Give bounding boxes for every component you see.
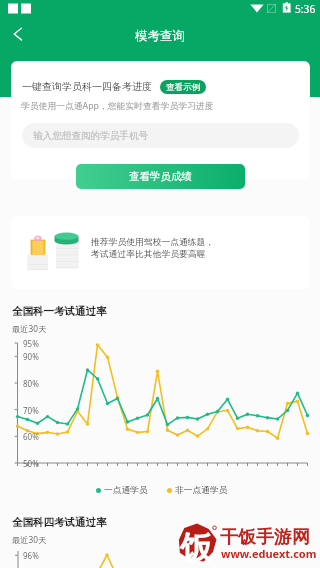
staticText: 5:36 <box>295 2 316 16</box>
staticText: 96% <box>23 550 39 561</box>
button[interactable]: 输入您想查阅的学员手机号 <box>22 123 299 148</box>
button[interactable]: Back <box>0 18 36 54</box>
staticText: 全国科一考试通过率 <box>12 305 107 318</box>
staticText: www.eduext.com <box>221 546 317 561</box>
staticText: 非一点通学员 <box>175 485 228 496</box>
staticText: 一键查询学员科一四备考进度 <box>22 80 152 93</box>
staticText: 50% <box>23 458 39 469</box>
staticText: 查看示例 <box>166 82 201 93</box>
staticText: 60% <box>23 431 39 442</box>
button[interactable]: 推荐学员使用驾校一点通练题， <box>11 216 310 289</box>
staticText: 一点通学员 <box>104 485 148 496</box>
button[interactable]: 查看学员成绩 <box>76 164 245 189</box>
staticText: 查看学员成绩 <box>129 170 192 183</box>
staticText: 饭 <box>180 528 212 568</box>
staticText: 全国科四考试通过率 <box>12 516 107 529</box>
staticText: 95% <box>23 338 39 349</box>
staticText: 输入您想查阅的学员手机号 <box>33 130 149 142</box>
staticText: 最近30天 <box>12 323 47 334</box>
staticText: 模考查询 <box>135 28 185 44</box>
staticText: 80% <box>23 378 39 389</box>
staticText: 70% <box>23 405 39 416</box>
staticText: 学员使用一点通App，您能实时查看学员学习进度 <box>21 100 214 112</box>
staticText: 最近30天 <box>12 534 47 545</box>
staticText: 干饭手游网 <box>220 526 310 549</box>
button[interactable]: 查看示例 <box>160 80 206 94</box>
staticText: 推荐学员使用驾校一点通练题， <box>91 237 215 248</box>
staticText: 90% <box>23 351 39 362</box>
staticText: 考试通过率比其他学员要高喔 <box>91 249 206 260</box>
